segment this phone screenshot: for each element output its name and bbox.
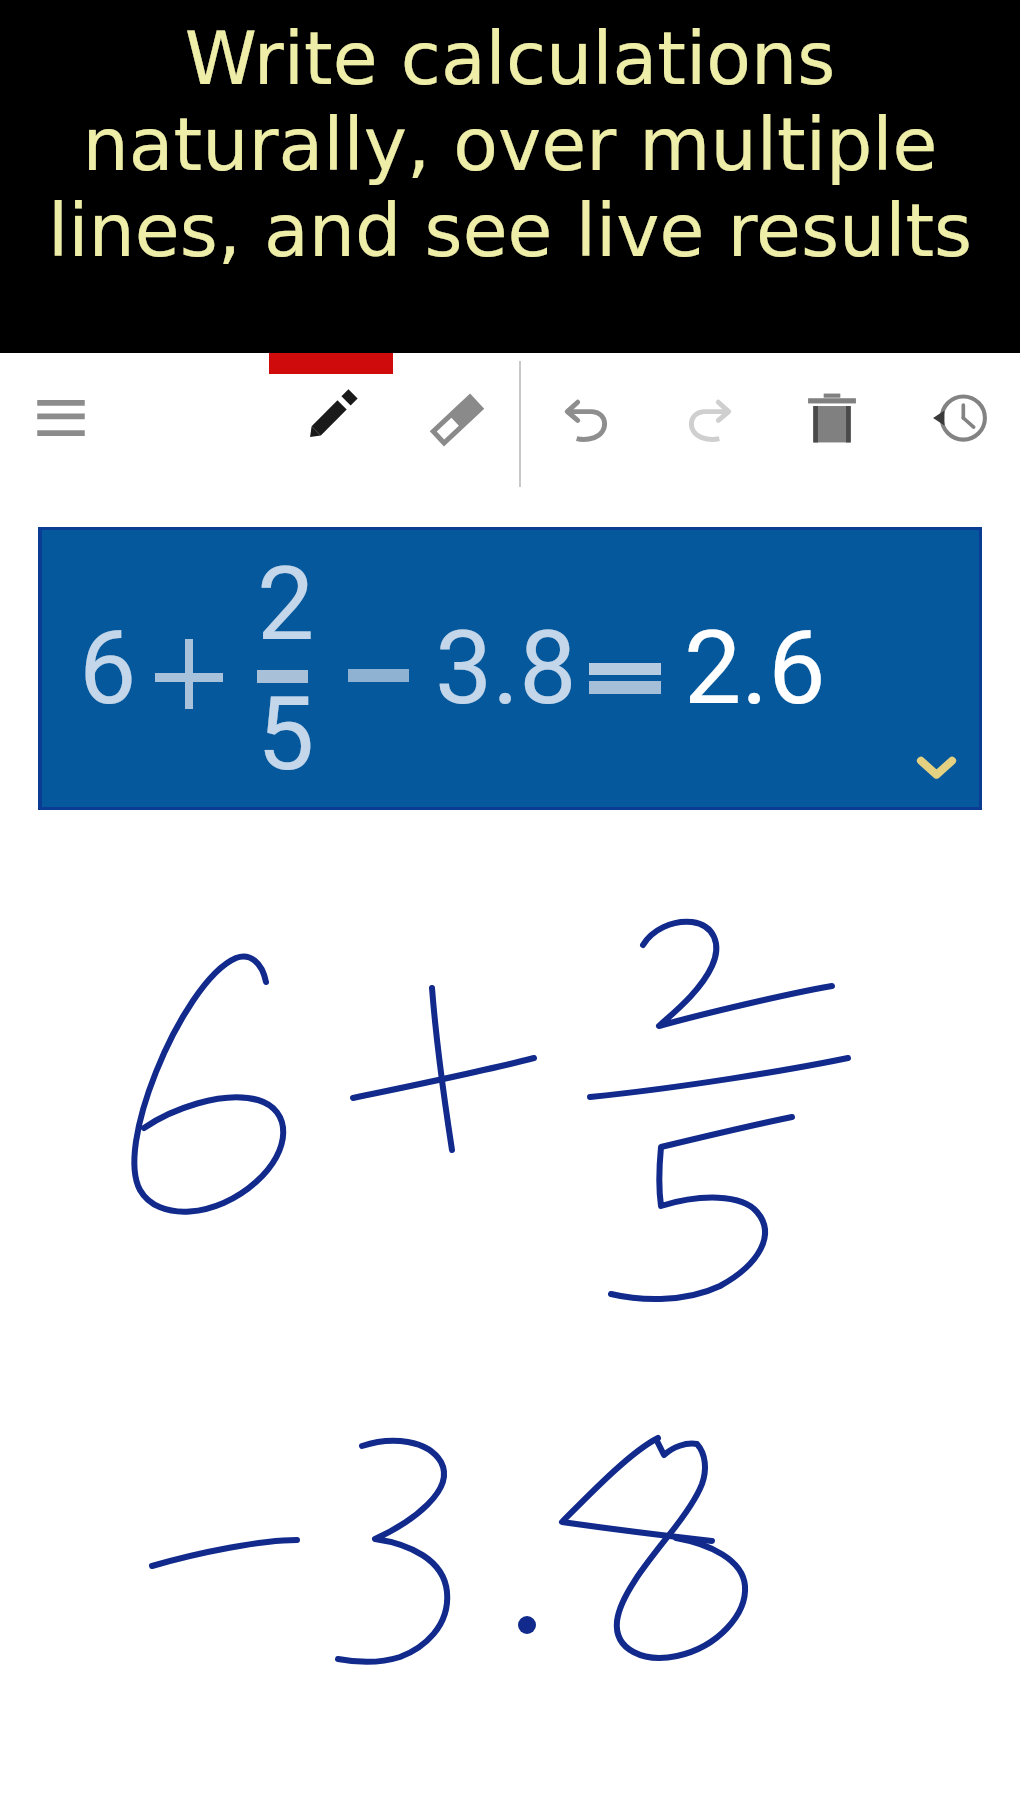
button[interactable]: Menu [7, 364, 115, 472]
staticText: 2 [257, 544, 315, 664]
button[interactable]: Redo [656, 368, 764, 476]
button[interactable]: Pen [278, 361, 386, 469]
button[interactable]: 6 [38, 527, 982, 810]
other: Expand [916, 753, 957, 784]
staticText: 6 [79, 608, 137, 728]
button[interactable]: Eraser [403, 366, 511, 474]
staticText: 5 [257, 674, 315, 794]
button[interactable]: Undo [532, 368, 640, 476]
button[interactable]: History [905, 364, 1013, 472]
staticText: Write calculations naturally, over multi… [0, 16, 1020, 273]
staticText: 2.6 [684, 608, 826, 728]
button[interactable]: Delete [778, 364, 886, 472]
staticText: 3.8 [435, 608, 577, 728]
other: Handwriting area [0, 0, 1020, 1819]
